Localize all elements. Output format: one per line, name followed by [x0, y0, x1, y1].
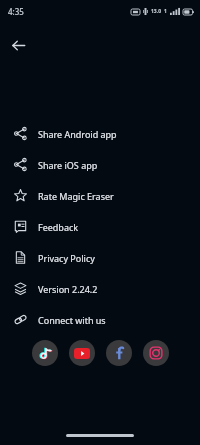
staticText: Connect with us — [38, 314, 106, 326]
button[interactable]: Share Android app — [0, 118, 200, 149]
staticText: Feedback — [38, 221, 79, 233]
staticText: Share Android app — [38, 128, 117, 140]
staticText: Share iOS app — [38, 159, 98, 171]
button[interactable]: Privacy Policy — [0, 242, 200, 273]
button[interactable]: Facebook — [106, 340, 132, 366]
staticText: 4:35 — [8, 6, 24, 17]
staticText: 13.0 — [151, 8, 161, 15]
button[interactable]: Version 2.24.2 — [0, 273, 200, 304]
staticText: 1 — [164, 8, 167, 15]
staticText: Rate Magic Eraser — [38, 190, 114, 202]
button[interactable]: Rate Magic Eraser — [0, 180, 200, 211]
button[interactable]: TikTok — [32, 340, 58, 366]
button[interactable]: Back — [3, 30, 33, 60]
staticText: Version 2.24.2 — [38, 283, 98, 295]
button[interactable]: YouTube — [69, 340, 95, 366]
button[interactable]: Share iOS app — [0, 149, 200, 180]
button[interactable]: Connect with us — [0, 304, 200, 335]
button[interactable]: Feedback — [0, 211, 200, 242]
staticText: Privacy Policy — [38, 252, 95, 264]
button[interactable]: Instagram — [143, 340, 169, 366]
